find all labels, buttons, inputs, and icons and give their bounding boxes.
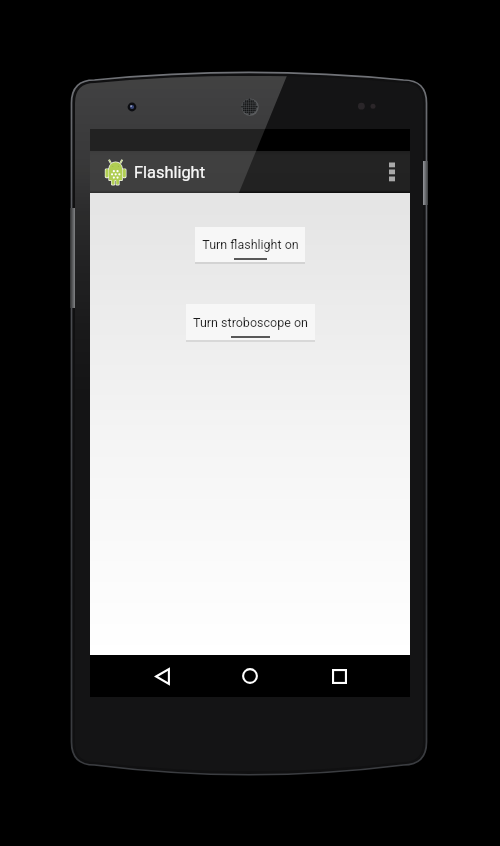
button[interactable]: Turn flashlight on xyxy=(195,227,305,262)
button[interactable]: Turn stroboscope on xyxy=(186,304,315,340)
staticText: Turn stroboscope on xyxy=(193,315,308,330)
button[interactable]: Recents xyxy=(315,655,363,697)
staticText: Turn flashlight on xyxy=(202,237,299,252)
staticText: Flashlight xyxy=(134,163,206,182)
button[interactable]: Home xyxy=(226,655,274,697)
button[interactable]: Back xyxy=(138,655,186,697)
button[interactable]: More options xyxy=(373,151,410,193)
